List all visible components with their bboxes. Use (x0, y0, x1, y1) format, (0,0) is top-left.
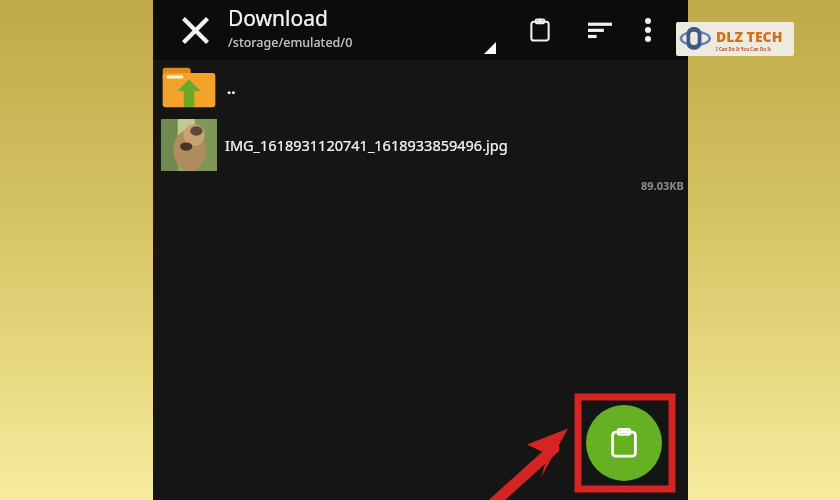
staticText: DLZ TECH (716, 27, 783, 46)
button[interactable]: IMG_1618931120741_1618933859496.jpg (153, 116, 688, 174)
staticText: IMG_1618931120741_1618933859496.jpg (225, 135, 508, 155)
button[interactable]: More options (627, 0, 669, 60)
button[interactable]: Clipboard (517, 0, 563, 60)
staticText: .. (227, 78, 236, 98)
staticText: I Can Do It You Can Do It (716, 46, 771, 52)
button[interactable]: Paste (586, 405, 662, 481)
staticText: Download (228, 4, 328, 33)
button[interactable]: Close (169, 0, 221, 60)
button[interactable]: Sort (577, 0, 623, 60)
button[interactable]: DLZ TECH (676, 22, 794, 56)
staticText: 89.03KB (641, 178, 684, 193)
staticText: /storage/emulated/0 (228, 34, 353, 51)
button[interactable]: .. (153, 60, 688, 116)
